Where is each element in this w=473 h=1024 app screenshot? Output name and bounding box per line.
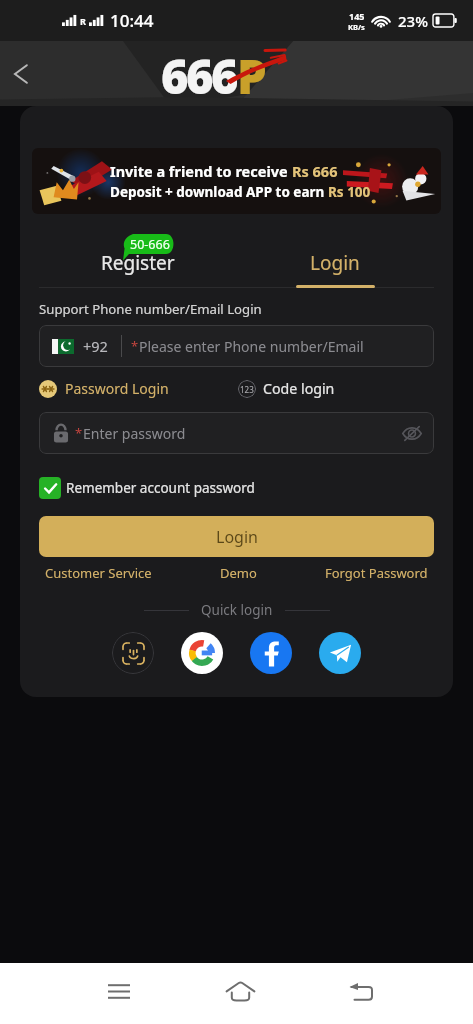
button[interactable]: Show password [394, 415, 430, 451]
staticText: 50-666 [130, 236, 170, 253]
staticText: Support Phone number/Email Login [39, 300, 262, 318]
button[interactable]: Customer Service [45, 564, 152, 582]
staticText: * [75, 424, 83, 442]
button[interactable]: +92 [39, 325, 434, 367]
button[interactable]: 123 [238, 379, 335, 398]
staticText: Code login [263, 379, 335, 398]
button[interactable]: Back [0, 52, 44, 96]
staticText: Deposit + download APP to earn [110, 183, 328, 201]
staticText: Enter password [83, 424, 186, 443]
staticText: * [131, 337, 139, 355]
button[interactable]: Home [213, 964, 267, 1018]
staticText: 145 [349, 10, 365, 22]
staticText: KB/s [348, 22, 365, 32]
staticText: R [80, 15, 86, 27]
button[interactable]: Invite a friend to receive [32, 148, 441, 214]
button[interactable]: Password Login [39, 379, 169, 398]
button[interactable]: Face ID login [112, 632, 154, 674]
button[interactable]: Login [236, 231, 434, 288]
button[interactable]: Demo [220, 564, 257, 582]
staticText: 123 [240, 384, 254, 395]
button[interactable]: Remember account password [39, 477, 255, 499]
button[interactable]: Register [39, 231, 236, 288]
staticText: Register [101, 250, 175, 276]
staticText: 23% [398, 11, 428, 31]
button[interactable]: Forgot Password [325, 564, 428, 582]
button[interactable]: Login [39, 516, 434, 557]
button[interactable]: Sign in with Google [181, 632, 223, 674]
button[interactable]: Sign in with Facebook [250, 632, 292, 674]
staticText: 666 [161, 44, 237, 94]
staticText: Forgot Password [325, 564, 428, 582]
staticText: P [237, 44, 267, 94]
staticText: Password Login [65, 379, 169, 398]
staticText: Customer Service [45, 564, 152, 582]
staticText: +92 [83, 336, 108, 356]
staticText: 10:44 [110, 9, 154, 32]
staticText: Rs 100 [328, 183, 371, 201]
staticText: Remember account password [66, 479, 255, 497]
staticText: Demo [220, 564, 257, 582]
staticText: Invite a friend to receive [110, 161, 292, 181]
button[interactable]: Back [334, 964, 388, 1018]
staticText: Quick login [201, 601, 273, 619]
staticText: Please enter Phone number/Email [139, 337, 364, 356]
staticText: Rs 666 [292, 161, 338, 181]
staticText: Login [216, 526, 258, 548]
button[interactable]: Recent apps [92, 964, 146, 1018]
button[interactable]: Sign in with Telegram [319, 632, 361, 674]
button[interactable]: * [39, 412, 434, 454]
staticText: Login [310, 250, 360, 276]
